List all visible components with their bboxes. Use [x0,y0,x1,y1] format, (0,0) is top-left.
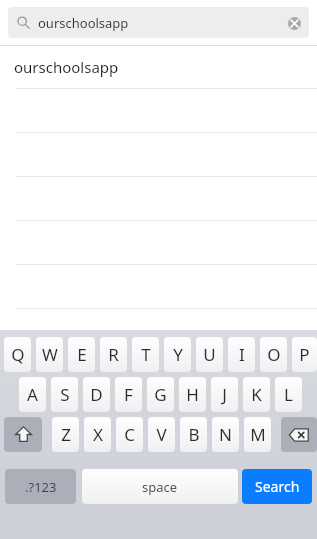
staticText: F [124,383,133,406]
button[interactable]: U [196,337,223,372]
staticText: V [156,423,167,446]
staticText: I [239,343,245,366]
button[interactable]: H [179,377,206,412]
staticText: M [250,423,266,446]
staticText: ourschoolsapp [38,14,129,32]
button[interactable]: G [147,377,174,412]
staticText: H [186,383,199,406]
staticText: W [42,343,58,366]
button[interactable]: Backspace [281,417,317,452]
button[interactable]: J [211,377,238,412]
staticText: B [188,423,200,446]
staticText: A [27,383,38,406]
staticText: Search [255,477,300,496]
button[interactable]: A [19,377,46,412]
button[interactable]: R [100,337,127,372]
staticText: D [90,383,103,406]
button[interactable]: S [51,377,78,412]
staticText: U [203,343,216,366]
button[interactable]: Search [242,469,312,504]
staticText: space [142,478,178,496]
staticText: ourschoolsapp [14,57,119,77]
button[interactable]: space [82,469,238,504]
staticText: .?123 [25,478,57,496]
button[interactable]: O [260,337,287,372]
staticText: J [222,383,227,406]
button[interactable]: ourschoolsapp [0,46,317,88]
staticText: C [124,423,135,446]
button[interactable]: Clear text [281,10,307,36]
staticText: R [108,343,119,366]
button[interactable]: P [292,337,317,372]
button[interactable]: ourschoolsapp [8,7,309,38]
staticText: O [267,343,281,366]
button[interactable]: F [115,377,142,412]
staticText: G [154,383,167,406]
button[interactable]: .?123 [5,469,76,504]
staticText: S [60,383,70,406]
staticText: N [219,423,232,446]
button[interactable]: L [275,377,302,412]
staticText: K [251,383,262,406]
button[interactable]: Shift [4,417,42,452]
staticText: T [141,343,151,366]
button[interactable]: X [84,417,111,452]
button[interactable]: V [148,417,175,452]
button[interactable]: M [244,417,271,452]
staticText: Y [173,343,183,366]
button[interactable]: Z [52,417,79,452]
button[interactable]: K [243,377,270,412]
button[interactable]: I [228,337,255,372]
button[interactable]: Q [4,337,31,372]
staticText: L [284,383,293,406]
staticText: Z [61,423,71,446]
staticText: X [93,423,103,446]
button[interactable]: D [83,377,110,412]
button[interactable]: W [36,337,63,372]
button[interactable]: C [116,417,143,452]
button[interactable] [0,309,317,352]
button[interactable]: E [68,337,95,372]
button[interactable]: N [212,417,239,452]
staticText: Q [11,343,25,366]
button[interactable]: T [132,337,159,372]
button[interactable]: B [180,417,207,452]
staticText: P [299,343,310,366]
staticText: E [77,343,87,366]
button[interactable]: Y [164,337,191,372]
